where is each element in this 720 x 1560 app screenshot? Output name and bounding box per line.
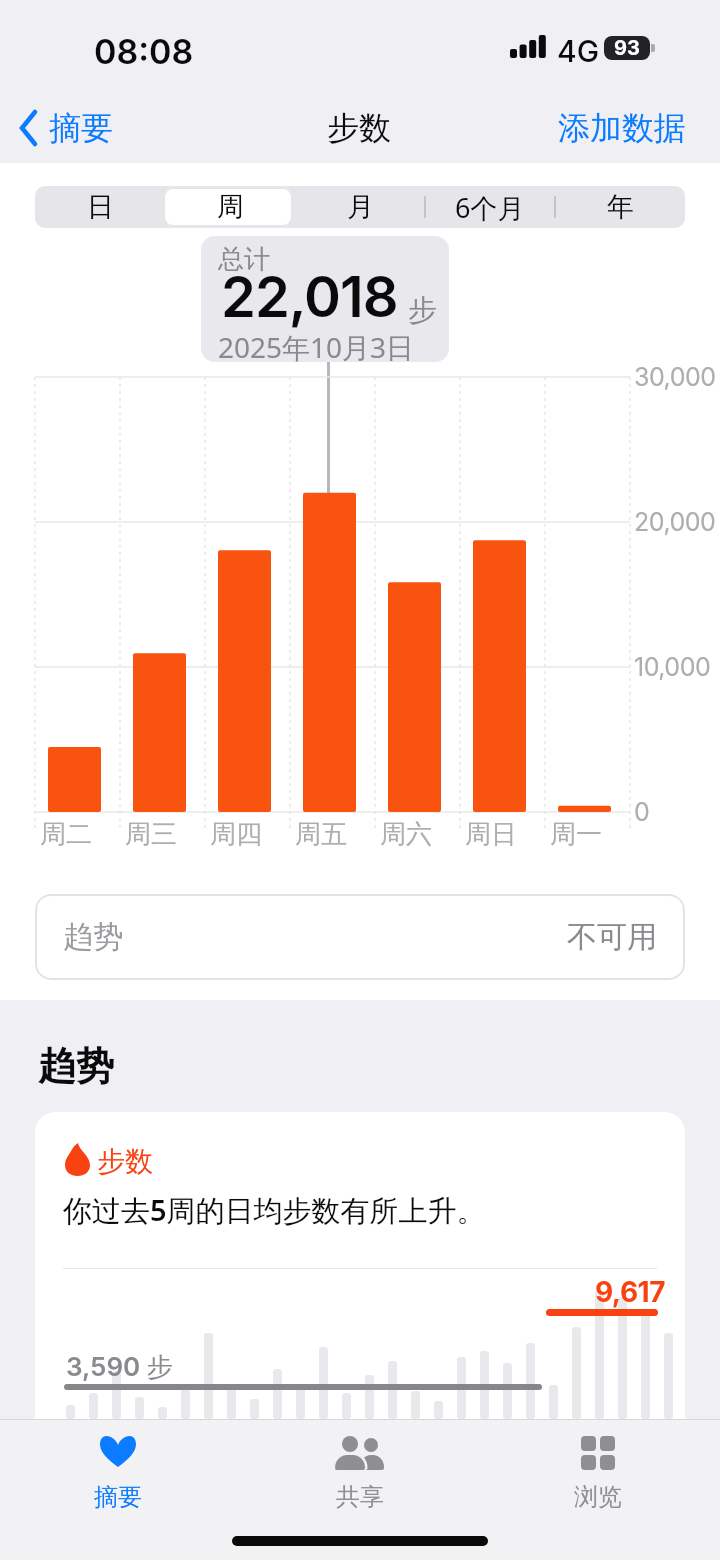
staticText: 步 xyxy=(408,292,437,329)
staticText: 周三 xyxy=(125,818,177,851)
staticText: 你过去5周的日均步数有所上升。 xyxy=(63,1190,486,1230)
staticText: 0 xyxy=(634,797,650,827)
staticText: 08:08 xyxy=(94,31,194,72)
staticText: 周四 xyxy=(210,818,262,851)
staticText: 浏览 xyxy=(574,1482,622,1512)
staticText: 年 xyxy=(607,190,634,224)
staticText: 周六 xyxy=(380,818,432,851)
staticText: 周日 xyxy=(465,818,517,851)
button[interactable]: 添加数据 xyxy=(554,104,690,152)
staticText: 4G xyxy=(557,33,600,69)
staticText: 20,000 xyxy=(634,507,716,537)
staticText: 9,617 xyxy=(595,1275,665,1309)
button[interactable]: 月 xyxy=(295,186,425,228)
staticText: 总计 xyxy=(218,243,270,276)
staticText: 周五 xyxy=(295,818,347,851)
staticText: 6个月 xyxy=(455,189,525,226)
staticText: 添加数据 xyxy=(558,108,686,148)
staticText: 趋势 xyxy=(38,1042,114,1090)
button[interactable]: 摘要 xyxy=(58,1429,178,1529)
staticText: 摘要 xyxy=(94,1482,142,1512)
button[interactable]: 摘要 xyxy=(14,104,117,152)
staticText: 摘要 xyxy=(49,108,113,148)
staticText: 22,018 xyxy=(221,263,398,331)
staticText: 10,000 xyxy=(634,652,711,682)
button[interactable]: 6个月 xyxy=(425,186,555,228)
staticText: 周 xyxy=(217,190,244,224)
button[interactable]: 步数 xyxy=(35,1112,685,1442)
staticText: 趋势 xyxy=(63,918,123,956)
staticText: 93 xyxy=(614,36,640,60)
button[interactable]: 周 xyxy=(165,186,295,228)
button[interactable]: 年 xyxy=(555,186,685,228)
staticText: 2025年10月3日 xyxy=(218,328,415,362)
button[interactable]: 共享 xyxy=(300,1429,420,1529)
staticText: 月 xyxy=(347,190,374,224)
button[interactable]: 浏览 xyxy=(538,1429,658,1529)
staticText: 不可用 xyxy=(567,918,657,956)
staticText: 日 xyxy=(87,190,114,224)
staticText: 步数 xyxy=(327,108,391,148)
staticText: 周一 xyxy=(550,818,602,851)
staticText: 步数 xyxy=(97,1144,153,1179)
staticText: 共享 xyxy=(336,1482,384,1512)
staticText: 周二 xyxy=(40,818,92,851)
staticText: 3,590 步 xyxy=(66,1351,173,1384)
button[interactable]: 趋势 xyxy=(35,894,685,980)
staticText: 30,000 xyxy=(634,362,716,392)
button[interactable]: 日 xyxy=(35,186,165,228)
